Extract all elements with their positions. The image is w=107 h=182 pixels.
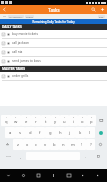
button[interactable]: Hide keyboard — [2, 169, 15, 182]
button[interactable]: Back — [0, 5, 9, 14]
staticText: s — [19, 130, 22, 136]
staticText: x — [26, 142, 29, 148]
button[interactable]: Menu — [2, 15, 6, 18]
staticText: b — [53, 142, 56, 148]
staticText: w — [14, 119, 18, 125]
button[interactable]: Remaining Daily Tasks for Today — [0, 19, 107, 24]
staticText: call jackson — [12, 41, 30, 45]
staticText: i — [73, 119, 75, 125]
staticText: 8 — [73, 116, 75, 119]
staticText: v — [44, 142, 47, 148]
button[interactable]: 8 — [69, 115, 78, 126]
button[interactable]: 4 — [31, 115, 41, 126]
button[interactable]: k — [75, 127, 85, 138]
staticText: 4 — [35, 116, 37, 119]
button[interactable]: ? — [86, 139, 95, 150]
staticText: q — [5, 119, 8, 125]
button[interactable]: Voice input — [90, 151, 106, 161]
staticText: o — [81, 119, 84, 125]
staticText: ! — [81, 142, 83, 148]
button[interactable]: x — [23, 139, 32, 150]
staticText: call nia — [12, 50, 23, 54]
staticText: d — [29, 130, 32, 136]
button[interactable]: 6 — [51, 115, 60, 126]
staticText: n — [62, 142, 65, 148]
button[interactable]: Volume down — [77, 169, 90, 182]
button[interactable]: Backspace — [96, 115, 106, 126]
staticText: Remaining Daily Tasks for Today — [32, 20, 75, 24]
button[interactable]: d — [25, 127, 35, 138]
button[interactable]: a — [5, 127, 15, 138]
button[interactable]: Enter — [99, 131, 103, 135]
button[interactable]: ! — [77, 139, 86, 150]
staticText: z — [17, 142, 19, 148]
button[interactable]: n — [59, 139, 68, 150]
button[interactable]: All Sections — [8, 15, 24, 18]
button[interactable]: 1 — [1, 115, 11, 126]
staticText: 7 — [64, 116, 66, 119]
staticText: 2 — [15, 116, 17, 119]
button[interactable]: 3 — [21, 115, 31, 126]
button[interactable]: Add task — [98, 5, 107, 14]
button[interactable]: f — [35, 127, 45, 138]
staticText: e — [25, 119, 28, 125]
button[interactable]: Search — [89, 5, 98, 14]
button[interactable]: 7 — [60, 115, 69, 126]
staticText: ? — [90, 142, 92, 148]
button[interactable]: call jackson — [0, 39, 107, 47]
button[interactable]: z — [13, 139, 23, 150]
staticText: order grills — [12, 74, 29, 78]
staticText: f — [39, 130, 41, 136]
button[interactable]: b — [50, 139, 59, 150]
button[interactable]: Recents — [32, 169, 45, 182]
button[interactable]: Shift — [1, 139, 13, 150]
staticText: Tasks — [48, 7, 60, 13]
staticText: j — [69, 130, 71, 136]
staticText: u — [63, 119, 66, 125]
button[interactable]: 2 — [11, 115, 21, 126]
staticText: 9 — [82, 116, 84, 119]
button[interactable]: order grills — [0, 72, 107, 80]
button[interactable]: Screenshot — [62, 169, 75, 182]
button[interactable]: 5 — [41, 115, 51, 126]
button[interactable]: s — [15, 127, 25, 138]
button[interactable]: Today — [25, 15, 34, 18]
button[interactable]: 9 — [78, 115, 87, 126]
staticText: 0 — [91, 116, 93, 119]
staticText: Today — [26, 15, 33, 18]
button[interactable]: v — [41, 139, 50, 150]
staticText: k — [79, 130, 82, 136]
button[interactable]: Emoji — [95, 139, 106, 150]
staticText: DAILY TASKS — [2, 25, 22, 29]
button[interactable]: Edit — [98, 15, 105, 18]
button[interactable]: call nia — [0, 48, 107, 56]
staticText: m — [71, 142, 75, 148]
button[interactable]: Menu — [47, 169, 60, 182]
staticText: All Sections — [9, 15, 23, 18]
staticText: c — [35, 142, 38, 148]
staticText: h — [59, 130, 62, 136]
button[interactable]: Home — [17, 169, 30, 182]
button[interactable]: buy movie tickets — [0, 30, 107, 38]
button[interactable]: , — [16, 151, 25, 161]
staticText: . — [85, 154, 86, 159]
button[interactable]: c — [32, 139, 41, 150]
button[interactable]: send james to boss — [0, 57, 107, 65]
button[interactable]: l — [85, 127, 95, 138]
staticText: 6 — [55, 116, 57, 119]
button[interactable]: m — [68, 139, 77, 150]
button[interactable]: h — [55, 127, 65, 138]
staticText: 5 — [45, 116, 47, 119]
button[interactable]: 0 — [87, 115, 96, 126]
button[interactable]: g — [45, 127, 55, 138]
staticText: l — [89, 130, 91, 136]
staticText: buy movie tickets — [12, 32, 38, 36]
staticText: MASTER TASKS — [2, 67, 25, 71]
button[interactable]: j — [65, 127, 75, 138]
staticText: 3 — [26, 116, 28, 119]
staticText: Edit — [99, 15, 104, 18]
button[interactable]: Symbols — [1, 151, 16, 161]
button[interactable]: Volume up — [92, 169, 105, 182]
